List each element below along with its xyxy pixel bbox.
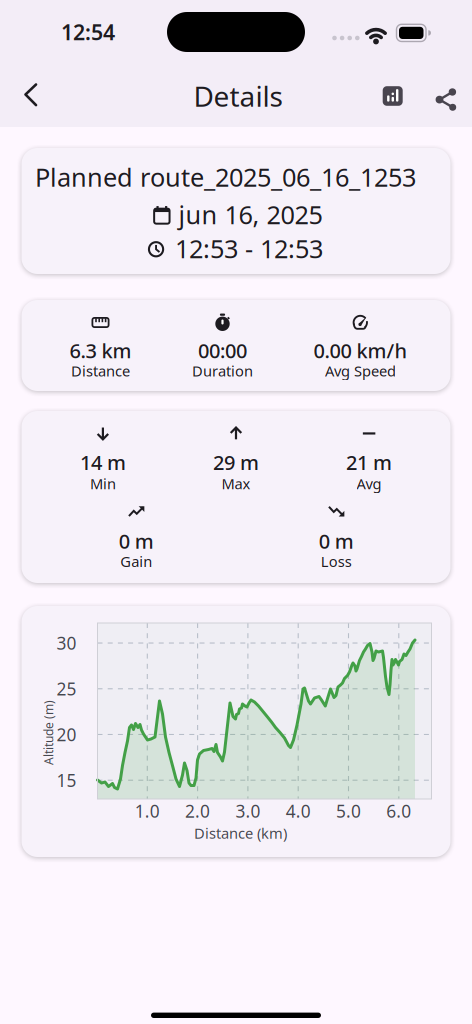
staticText: Loss (321, 551, 352, 571)
staticText: Avg Speed (325, 361, 396, 381)
staticText: Duration (192, 361, 253, 381)
staticText: 1.0 (135, 799, 160, 822)
staticText: 5.0 (336, 799, 361, 822)
staticText: Planned route_2025_06_16_1253 (35, 160, 416, 194)
staticText: Distance (71, 361, 130, 381)
staticText: Avg (357, 474, 382, 493)
staticText: 29 m (213, 449, 259, 475)
staticText: 2.0 (185, 799, 210, 822)
staticText: 6.0 (386, 799, 411, 822)
staticText: 20 (56, 723, 76, 746)
staticText: 30 (56, 631, 76, 654)
staticText: 15 (56, 769, 76, 792)
staticText: 21 m (346, 449, 392, 475)
button[interactable]: Chart (375, 78, 411, 114)
button[interactable]: Back (13, 73, 48, 116)
staticText: 12:54 (61, 18, 115, 46)
staticText: Gain (120, 551, 152, 571)
staticText: 0 m (119, 528, 154, 554)
button[interactable]: Share (424, 76, 464, 116)
staticText: jun 16, 2025 (178, 198, 322, 231)
staticText: 4.0 (286, 799, 311, 822)
staticText: Details (193, 77, 282, 115)
staticText: 00:00 (198, 337, 247, 364)
staticText: 3.0 (235, 799, 260, 822)
staticText: 0.00 km/h (313, 337, 407, 364)
staticText: 12:53 - 12:53 (175, 232, 323, 265)
staticText: 25 (56, 677, 76, 700)
staticText: 14 m (80, 449, 126, 475)
staticText: Distance (km) (194, 823, 287, 843)
staticText: 6.3 km (69, 337, 131, 364)
staticText: Altitude (m) (16, 724, 81, 740)
staticText: Min (90, 474, 116, 493)
staticText: Max (221, 474, 250, 493)
staticText: 0 m (319, 528, 354, 554)
